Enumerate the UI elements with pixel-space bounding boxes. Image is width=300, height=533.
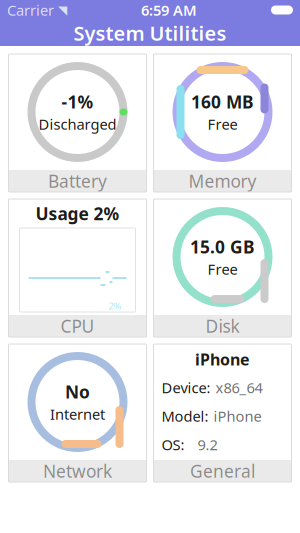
button[interactable]: 160 MB xyxy=(153,54,291,192)
staticText: System Utilities xyxy=(73,20,226,46)
staticText: iPhone xyxy=(195,349,250,370)
staticText: Model: xyxy=(161,406,208,426)
staticText: 2% xyxy=(108,300,121,312)
staticText: 6:59 AM xyxy=(141,0,197,20)
staticText: Device: xyxy=(161,378,210,397)
staticText: ◥ xyxy=(58,3,67,17)
staticText: iPhone xyxy=(213,406,261,426)
button[interactable]: 15.0 GB xyxy=(153,199,291,337)
staticText: No xyxy=(65,380,90,403)
staticText: Free xyxy=(207,259,237,279)
staticText: Carrier xyxy=(7,0,54,20)
staticText: Network xyxy=(43,459,112,482)
staticText: Battery xyxy=(48,169,107,192)
staticText: OS: xyxy=(161,435,184,454)
button[interactable]: iPhone xyxy=(153,344,291,482)
button[interactable]: No xyxy=(8,344,146,482)
staticText: Free xyxy=(207,114,237,134)
staticText: 160 MB xyxy=(191,90,254,113)
staticText: CPU xyxy=(60,314,94,337)
button[interactable]: Usage 2% xyxy=(8,199,146,337)
staticText: Memory xyxy=(188,169,256,192)
staticText: 9.2 xyxy=(189,435,217,454)
staticText: Discharged xyxy=(38,114,116,134)
staticText: 15.0 GB xyxy=(190,235,255,258)
staticText: Usage 2% xyxy=(35,202,119,225)
staticText: -1% xyxy=(61,90,93,113)
staticText: General xyxy=(190,459,255,482)
button[interactable]: -1% xyxy=(8,54,146,192)
staticText: x86_64 xyxy=(215,378,262,397)
staticText: Disk xyxy=(205,314,239,337)
staticText: Internet xyxy=(50,404,105,424)
